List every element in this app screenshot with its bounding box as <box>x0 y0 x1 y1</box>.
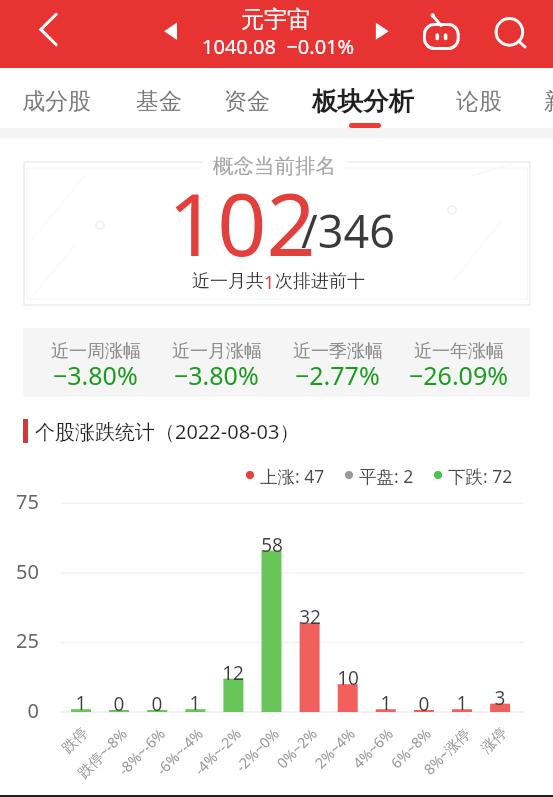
staticText: 3 <box>480 685 520 711</box>
button[interactable]: 论股 <box>456 83 502 120</box>
button[interactable]: AI assistant <box>416 6 468 58</box>
staticText: 0 <box>5 697 39 724</box>
button[interactable]: 板块分析 <box>312 81 414 121</box>
staticText: −3.80% <box>174 358 259 392</box>
button[interactable]: 近一季涨幅 <box>277 328 398 397</box>
staticText: 25 <box>5 627 39 654</box>
button[interactable]: 平盘: 2 <box>345 464 414 486</box>
staticText: 资金 <box>224 87 270 116</box>
staticText: 近一年涨幅 <box>414 340 504 363</box>
staticText: 0 <box>137 691 177 717</box>
button[interactable]: 近一月涨幅 <box>156 328 277 397</box>
staticText: 12 <box>213 660 253 686</box>
staticText: 32 <box>290 604 330 630</box>
staticText: -4%~-2% <box>153 724 243 797</box>
button[interactable]: 成分股 <box>22 83 91 120</box>
staticText: 8%~涨停 <box>382 724 472 797</box>
staticText: 板块分析 <box>312 85 414 117</box>
staticText: 近一周涨幅 <box>51 340 141 363</box>
button[interactable]: Back <box>22 6 70 54</box>
staticText: -8%~-6% <box>77 724 167 797</box>
staticText: 成分股 <box>22 87 91 116</box>
staticText: 1 <box>61 690 101 716</box>
staticText: 新闻 <box>544 87 553 116</box>
staticText: −3.80% <box>53 358 138 392</box>
staticText: 上涨: 47 <box>260 464 325 486</box>
button[interactable]: 新闻 <box>544 83 553 120</box>
staticText: 50 <box>5 558 39 585</box>
staticText: 1 <box>366 690 406 716</box>
staticText: 论股 <box>456 87 502 116</box>
staticText: 75 <box>5 488 39 515</box>
staticText: 次排进前十 <box>275 270 365 293</box>
button[interactable]: Search <box>484 6 536 58</box>
staticText: 个股涨跌统计（2022-08-03） <box>35 418 300 445</box>
staticText: 0 <box>404 691 444 717</box>
button[interactable]: 上涨: 47 <box>246 464 325 486</box>
staticText: 1 <box>175 690 215 716</box>
staticText: 下跌: 72 <box>448 464 513 486</box>
staticText: 基金 <box>136 87 182 116</box>
staticText: 1 <box>264 270 275 295</box>
staticText: 1 <box>442 690 482 716</box>
staticText: 0%~2% <box>229 724 319 797</box>
staticText: 涨停 <box>420 724 510 797</box>
staticText: −26.09% <box>409 358 508 392</box>
button[interactable]: Next <box>365 12 401 48</box>
staticText: 102 <box>168 164 316 281</box>
staticText: 2%~4% <box>267 724 357 797</box>
button[interactable]: 近一年涨幅 <box>398 328 519 397</box>
button[interactable]: 基金 <box>136 83 182 120</box>
button[interactable]: 下跌: 72 <box>434 464 513 486</box>
staticText: 4%~6% <box>305 724 395 797</box>
staticText: 跌停 <box>1 724 91 797</box>
staticText: 平盘: 2 <box>359 464 414 486</box>
staticText: /346 <box>301 200 395 261</box>
staticText: 10 <box>328 665 368 691</box>
staticText: 6%~8% <box>343 724 433 797</box>
staticText: 概念当前排名 <box>213 153 336 179</box>
staticText: 1040.08 −0.01% <box>202 33 355 60</box>
staticText: -6%~-4% <box>115 724 205 797</box>
staticText: 0 <box>99 691 139 717</box>
button[interactable]: 近一周涨幅 <box>35 328 156 397</box>
staticText: -2%~0% <box>191 724 281 797</box>
staticText: −2.77% <box>295 358 380 392</box>
button[interactable]: Previous <box>154 12 190 48</box>
staticText: 近一月涨幅 <box>172 340 262 363</box>
staticText: 58 <box>252 532 292 558</box>
staticText: 跌停~-8% <box>39 724 129 797</box>
staticText: 元宇宙 <box>241 5 310 34</box>
staticText: 近一月共 <box>192 270 264 293</box>
button[interactable]: 资金 <box>224 83 270 120</box>
staticText: 近一季涨幅 <box>293 340 383 363</box>
